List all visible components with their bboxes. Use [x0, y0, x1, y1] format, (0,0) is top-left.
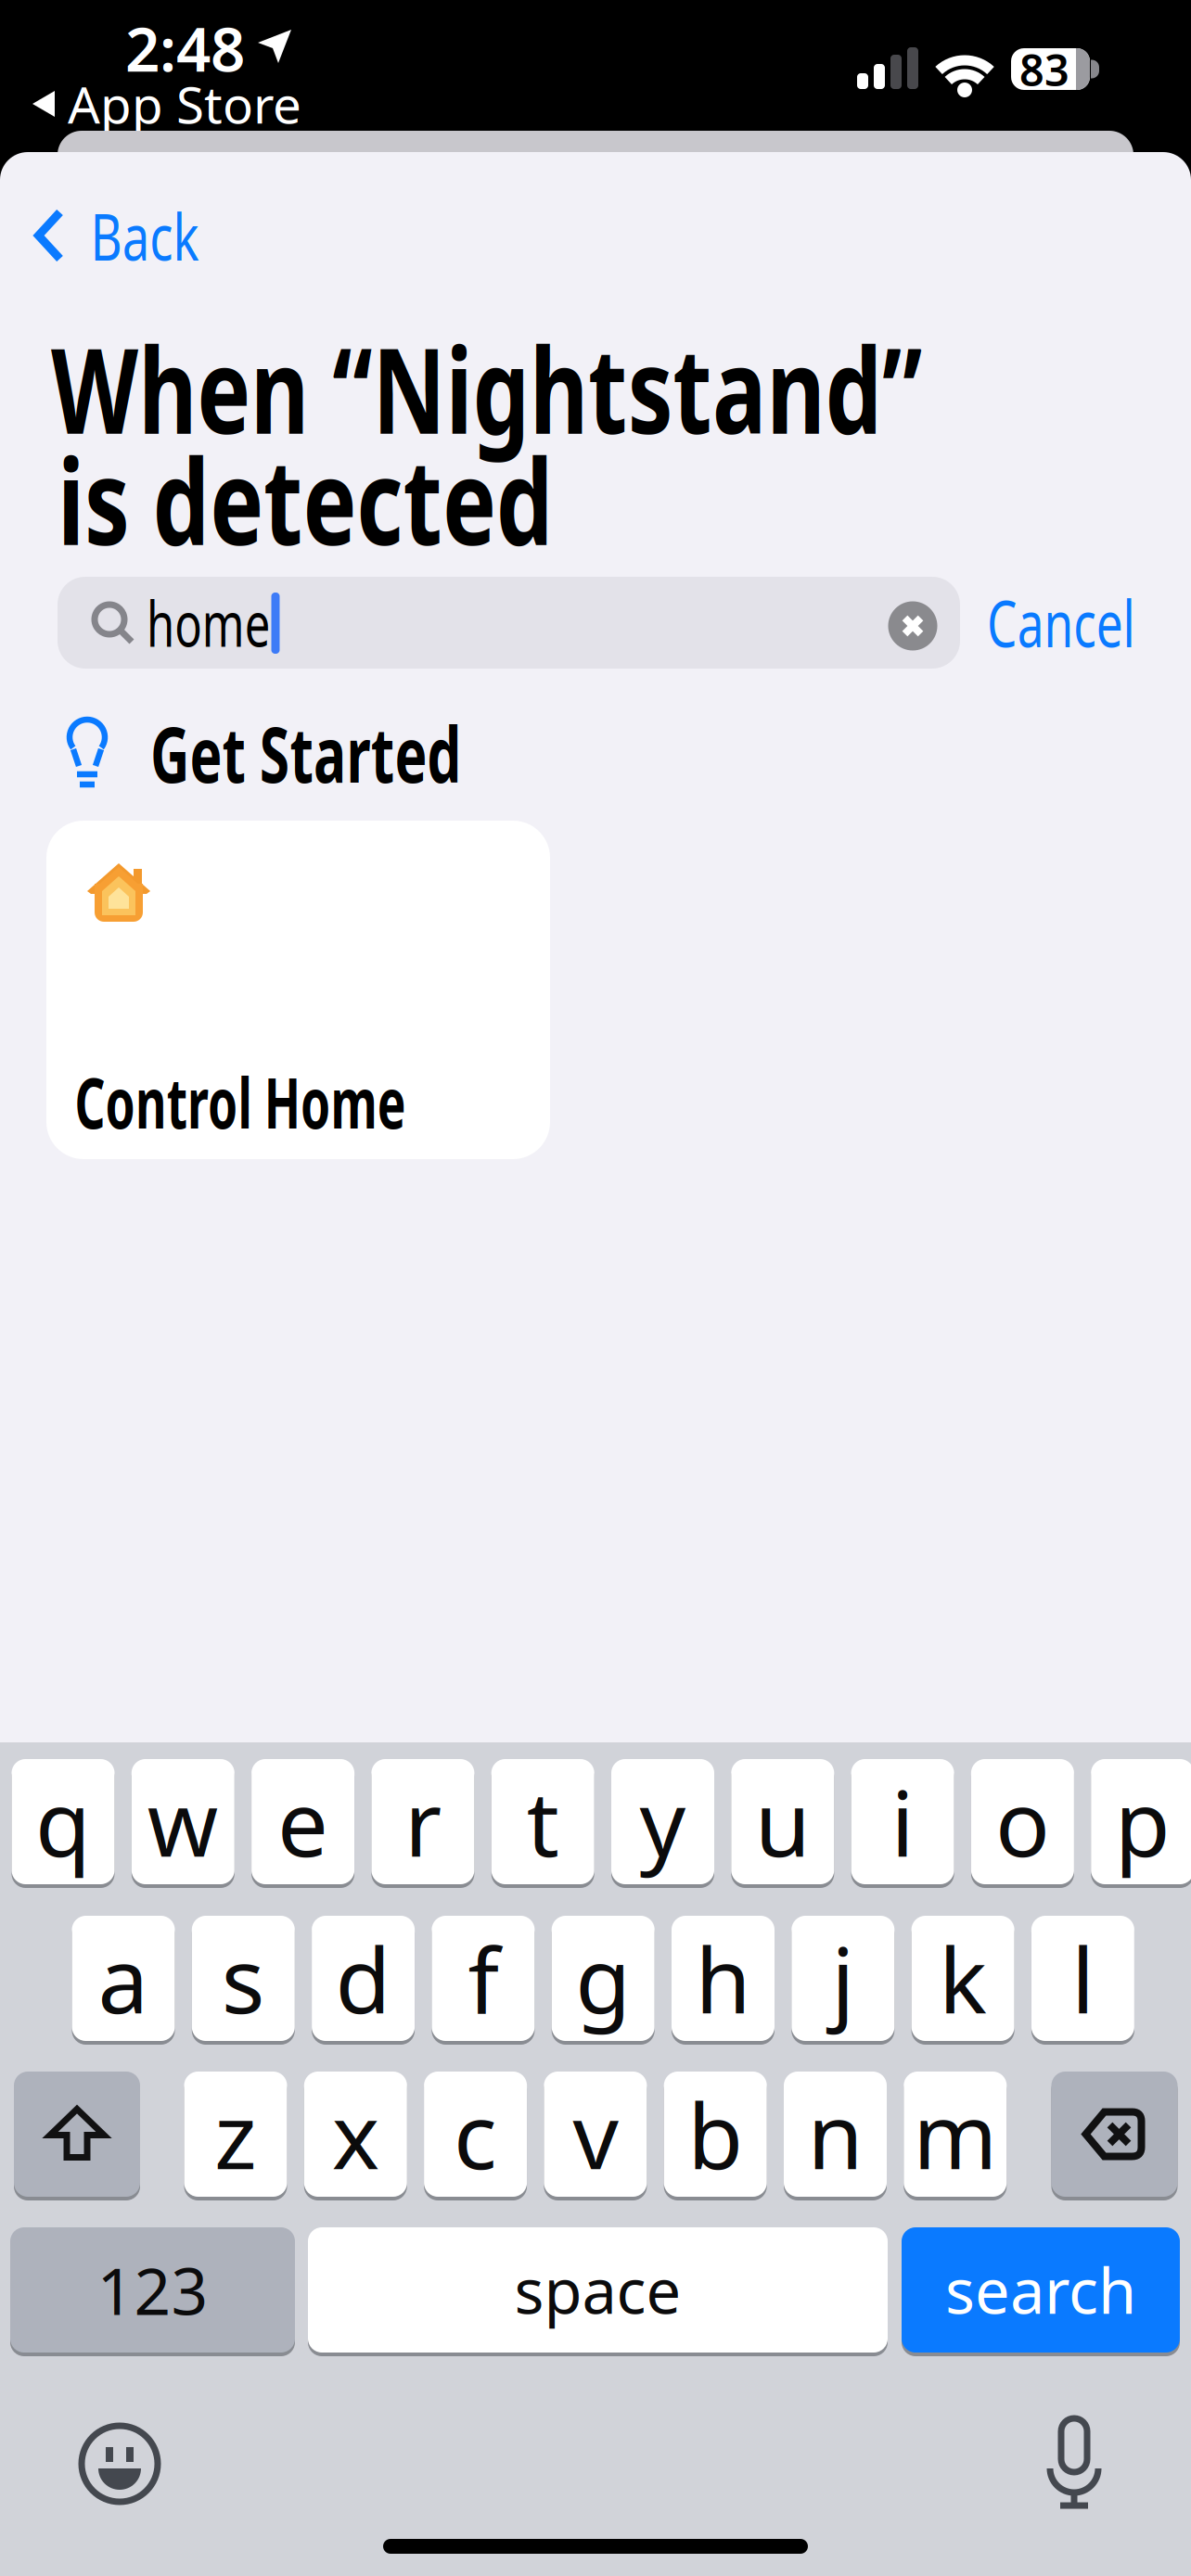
- button[interactable]: g: [552, 1916, 655, 2041]
- staticText: Control Home: [75, 1056, 555, 1148]
- button[interactable]: n: [784, 2072, 887, 2197]
- staticText: j: [831, 1918, 855, 2038]
- staticText: o: [995, 1762, 1050, 1882]
- button[interactable]: Cancel: [961, 580, 1161, 665]
- staticText: i: [891, 1762, 914, 1882]
- staticText: s: [222, 1918, 265, 2038]
- staticText: 123: [97, 2247, 208, 2333]
- staticText: g: [575, 1918, 631, 2038]
- staticText: d: [335, 1918, 391, 2038]
- staticText: c: [454, 2074, 497, 2194]
- staticText: u: [755, 1762, 811, 1882]
- button[interactable]: Clear text: [888, 601, 937, 650]
- button[interactable]: search: [902, 2227, 1180, 2353]
- button[interactable]: 123: [10, 2227, 295, 2353]
- staticText: v: [573, 2074, 618, 2194]
- button[interactable]: space: [308, 2227, 888, 2353]
- button[interactable]: i: [851, 1759, 954, 1884]
- button[interactable]: s: [192, 1916, 295, 2041]
- button[interactable]: c: [424, 2072, 527, 2197]
- staticText: y: [640, 1762, 686, 1882]
- button[interactable]: w: [132, 1759, 234, 1884]
- button[interactable]: r: [371, 1759, 474, 1884]
- staticText: space: [514, 2249, 681, 2331]
- button[interactable]: x: [304, 2072, 407, 2197]
- staticText: search: [945, 2249, 1136, 2331]
- button[interactable]: m: [904, 2072, 1007, 2197]
- button[interactable]: t: [491, 1759, 594, 1884]
- staticText: b: [688, 2074, 743, 2194]
- button[interactable]: Return to App Store: [32, 70, 301, 138]
- button[interactable]: d: [312, 1916, 415, 2041]
- button[interactable]: e: [251, 1759, 354, 1884]
- button[interactable]: Control Home: [46, 821, 550, 1159]
- staticText: t: [527, 1762, 559, 1882]
- button[interactable]: Search: [58, 577, 960, 669]
- staticText: home: [147, 580, 318, 664]
- staticText: Get Started: [150, 702, 588, 804]
- staticText: z: [214, 2074, 257, 2194]
- button[interactable]: y: [611, 1759, 714, 1884]
- staticText: When “Nightstand”: [51, 309, 1191, 466]
- staticText: m: [913, 2074, 997, 2194]
- button[interactable]: b: [664, 2072, 767, 2197]
- staticText: is detected: [58, 420, 710, 578]
- button[interactable]: p: [1091, 1759, 1191, 1884]
- staticText: q: [35, 1762, 91, 1882]
- button[interactable]: o: [971, 1759, 1074, 1884]
- button[interactable]: j: [791, 1916, 894, 2041]
- staticText: Back: [90, 193, 233, 278]
- staticText: e: [277, 1762, 328, 1882]
- staticText: 83: [1019, 41, 1069, 98]
- button[interactable]: Dictation: [1044, 2417, 1105, 2509]
- staticText: k: [939, 1918, 987, 2038]
- staticText: x: [332, 2074, 379, 2194]
- button[interactable]: u: [731, 1759, 834, 1884]
- staticText: App Store: [68, 70, 301, 138]
- staticText: f: [468, 1918, 498, 2038]
- button[interactable]: q: [12, 1759, 115, 1884]
- button[interactable]: z: [184, 2072, 287, 2197]
- button[interactable]: Shift: [14, 2072, 140, 2197]
- staticText: r: [404, 1762, 441, 1882]
- button[interactable]: h: [672, 1916, 775, 2041]
- button[interactable]: a: [72, 1916, 175, 2041]
- staticText: a: [98, 1918, 149, 2038]
- staticText: h: [695, 1918, 751, 2038]
- button[interactable]: v: [544, 2072, 647, 2197]
- staticText: 2:48: [125, 8, 245, 88]
- button[interactable]: Emoji: [79, 2423, 160, 2505]
- button[interactable]: Delete: [1051, 2072, 1178, 2197]
- staticText: l: [1071, 1918, 1094, 2038]
- staticText: w: [147, 1762, 219, 1882]
- button[interactable]: f: [432, 1916, 535, 2041]
- staticText: n: [807, 2074, 863, 2194]
- button[interactable]: k: [911, 1916, 1014, 2041]
- staticText: Cancel: [961, 580, 1161, 665]
- button[interactable]: Back: [34, 193, 233, 278]
- staticText: p: [1115, 1762, 1170, 1882]
- button[interactable]: l: [1031, 1916, 1134, 2041]
